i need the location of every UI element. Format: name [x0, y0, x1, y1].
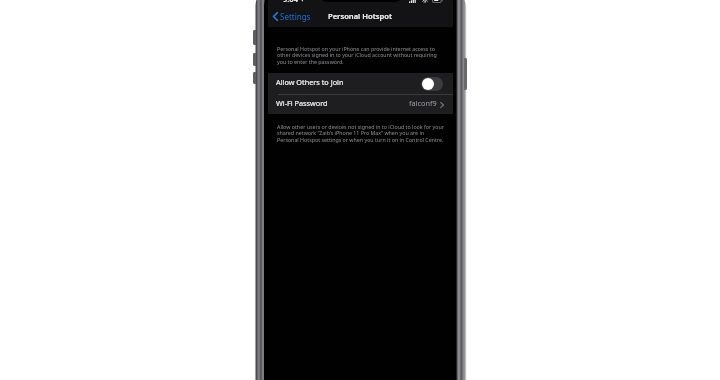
staticText: Settings	[280, 11, 311, 22]
staticText: Wi-Fi Password	[276, 98, 328, 108]
button[interactable]: Allow Others to Join	[268, 73, 453, 94]
staticText: Allow Others to Join	[276, 77, 344, 87]
staticText: Personal Hotspot on your iPhone can prov…	[277, 45, 437, 66]
staticText: Allow other users or devices not signed …	[277, 123, 444, 144]
button[interactable]: Settings	[268, 8, 321, 25]
button[interactable]: Wi-Fi Password	[268, 95, 453, 114]
staticText: 9:04	[283, 0, 298, 4]
button[interactable]: Allow Others to Join toggle	[421, 77, 443, 91]
staticText: falconf9	[409, 98, 437, 108]
staticText: Personal Hotspot	[328, 11, 393, 21]
